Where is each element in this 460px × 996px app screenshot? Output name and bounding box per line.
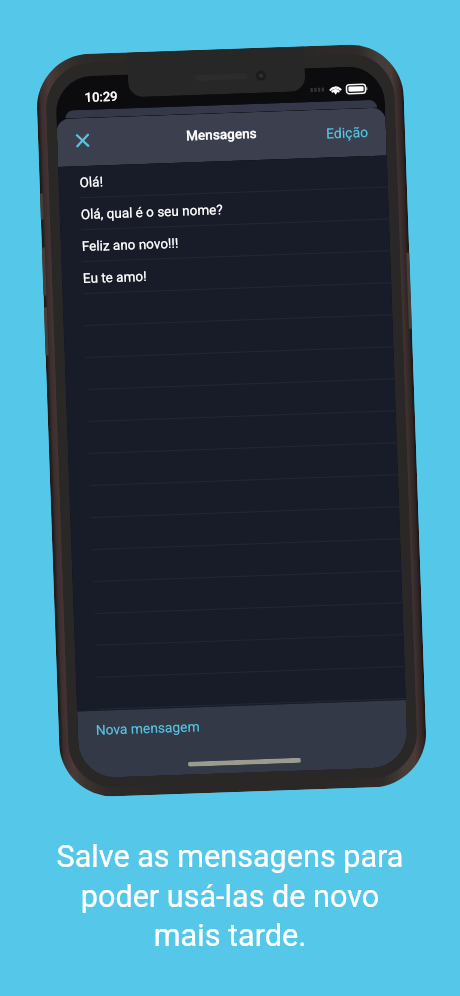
button[interactable]: [76, 667, 406, 711]
staticText: Feliz ano novo!!!: [81, 235, 179, 254]
button[interactable]: Fechar: [61, 119, 103, 161]
button[interactable]: Olá, qual é o seu nome?: [59, 187, 389, 231]
staticText: Nova mensagem: [95, 718, 200, 738]
staticText: Edição: [326, 124, 369, 141]
button[interactable]: Olá!: [58, 155, 388, 199]
staticText: Olá, qual é o seu nome?: [80, 201, 224, 222]
staticText: Mensagens: [186, 125, 257, 143]
staticText: Olá!: [79, 173, 104, 190]
staticText: 10:29: [84, 89, 118, 105]
button[interactable]: Eu te amo!: [61, 251, 391, 295]
button[interactable]: Edição: [309, 111, 387, 154]
staticText: Eu te amo!: [83, 268, 147, 286]
staticText: Salve as mensagens para poder usá-las de…: [0, 839, 460, 954]
button[interactable]: Feliz ano novo!!!: [60, 219, 390, 263]
button[interactable]: Nova mensagem: [77, 700, 408, 778]
